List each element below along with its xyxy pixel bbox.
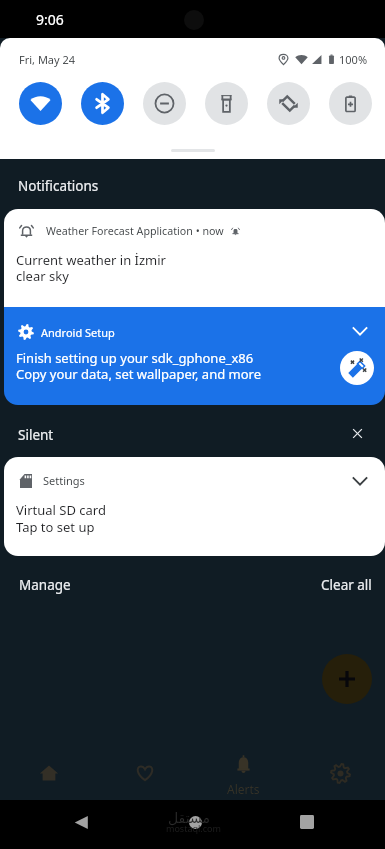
button[interactable]: Alerts [213,754,274,797]
button[interactable]: Home [180,807,210,837]
button[interactable]: Manage [19,576,71,594]
button[interactable]: Dismiss silent notifications [344,420,370,446]
button[interactable]: Favorites [124,752,166,794]
staticText: Virtual SD card [16,501,106,519]
staticText: Current weather in İzmir [16,251,166,269]
button[interactable]: Expand [348,319,372,343]
button[interactable]: Quick setting [205,82,248,125]
button[interactable]: Quick setting [143,82,186,125]
staticText: Fri, May 24 [19,52,76,67]
button[interactable]: Weather Forecast Application • now [4,209,385,307]
staticText: mostaql.com [166,822,221,834]
button[interactable]: Recents [292,807,322,837]
staticText: Alerts [227,781,260,797]
button[interactable]: Android Setup [4,307,385,405]
staticText: مستقل [168,810,210,826]
staticText: 100% [339,52,368,67]
button[interactable]: Back [66,807,96,837]
button[interactable]: Expand [348,469,372,493]
staticText: Settings [43,473,85,488]
staticText: Finish setting up your sdk_gphone_x86 [16,349,254,367]
staticText: Copy your data, set wallpaper, and more [16,365,262,383]
button[interactable]: Quick setting [81,82,124,125]
button[interactable]: Quick setting [19,82,62,125]
staticText: 9:06 [36,10,64,29]
staticText: Silent [18,426,54,444]
button[interactable]: Quick setting [267,82,310,125]
button[interactable]: Clear all [321,576,372,594]
staticText: Notifications [18,177,99,195]
staticText: clear sky [16,267,69,285]
button[interactable]: Home [28,752,70,794]
button[interactable]: Settings [319,752,361,794]
staticText: Weather Forecast Application • now [46,224,224,239]
staticText: Android Setup [41,325,115,340]
button[interactable]: Set up [340,351,374,385]
button[interactable]: Quick setting [329,82,372,125]
staticText: Tap to set up [16,518,95,536]
button[interactable]: Add [322,654,372,704]
button[interactable]: Settings [4,457,385,556]
staticText: Manage [19,576,71,594]
staticText: Clear all [321,576,372,594]
